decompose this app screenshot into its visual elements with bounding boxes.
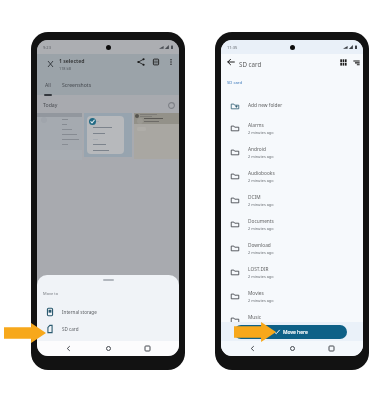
staticText: SD card xyxy=(62,326,79,332)
button[interactable]: Delete xyxy=(148,54,164,70)
staticText: SD card xyxy=(227,80,243,86)
button[interactable]: Sort xyxy=(348,54,363,70)
button[interactable]: Select all xyxy=(168,102,175,109)
staticText: Screenshots xyxy=(62,82,92,89)
button[interactable]: Documents xyxy=(221,212,363,236)
button[interactable]: Add new folder xyxy=(221,95,363,116)
button[interactable]: Android xyxy=(221,140,363,164)
staticText: Today xyxy=(43,101,58,108)
staticText: 2 minutes ago xyxy=(248,154,274,159)
button[interactable]: DCIM xyxy=(221,188,363,212)
staticText: Movies xyxy=(248,290,264,297)
staticText: Audiobooks xyxy=(248,170,275,177)
staticText: 2 minutes ago xyxy=(248,322,274,327)
button[interactable]: Home xyxy=(100,341,116,356)
staticText: 9:23 xyxy=(43,45,51,50)
button[interactable]: Download xyxy=(221,236,363,260)
button[interactable]: Recents xyxy=(139,341,155,356)
button[interactable]: LOST.DIR xyxy=(221,260,363,284)
button[interactable]: Screenshots xyxy=(55,73,99,97)
staticText: Music xyxy=(248,314,262,321)
staticText: 2 minutes ago xyxy=(248,202,274,207)
staticText: 118 kB xyxy=(59,66,71,71)
button[interactable] xyxy=(132,110,179,158)
button[interactable]: More options xyxy=(163,54,179,70)
staticText: 2 minutes ago xyxy=(248,178,274,183)
button[interactable]: Back xyxy=(223,54,239,70)
button[interactable]: Close selection xyxy=(40,54,60,73)
button[interactable]: Movies xyxy=(221,284,363,308)
button[interactable]: Grid view xyxy=(335,54,351,70)
staticText: LOST.DIR xyxy=(248,266,269,273)
button[interactable]: Internal storage xyxy=(37,304,179,319)
staticText: SD card xyxy=(239,60,262,68)
button[interactable] xyxy=(37,110,85,158)
button[interactable]: Back xyxy=(244,341,260,356)
staticText: Alarms xyxy=(248,122,264,129)
button[interactable]: Recents xyxy=(323,341,339,356)
staticText: Internal storage xyxy=(62,309,97,315)
button[interactable]: Move here xyxy=(234,325,347,339)
staticText: 1 selected xyxy=(59,58,85,65)
button[interactable]: Back xyxy=(60,341,76,356)
staticText: Android xyxy=(248,146,266,153)
staticText: 2 minutes ago xyxy=(248,298,274,303)
button[interactable]: Music xyxy=(221,308,363,332)
button[interactable]: Alarms xyxy=(221,116,363,140)
staticText: 11:35 xyxy=(227,45,238,50)
staticText: 2 minutes ago xyxy=(248,226,274,231)
button[interactable]: Share xyxy=(133,54,149,70)
staticText: 2 minutes ago xyxy=(248,274,274,279)
staticText: Move to xyxy=(43,291,59,296)
staticText: Add new folder xyxy=(248,102,283,109)
staticText: Move here xyxy=(283,329,308,336)
button[interactable]: Home xyxy=(284,341,300,356)
staticText: 2 minutes ago xyxy=(248,250,274,255)
button[interactable] xyxy=(85,110,133,158)
staticText: 2 minutes ago xyxy=(248,130,274,135)
button[interactable]: SD card xyxy=(37,321,179,336)
staticText: All xyxy=(45,82,51,89)
staticText: Documents xyxy=(248,218,274,225)
button[interactable]: All xyxy=(38,73,58,97)
button[interactable]: Audiobooks xyxy=(221,164,363,188)
staticText: Download xyxy=(248,242,271,249)
staticText: DCIM xyxy=(248,194,261,201)
